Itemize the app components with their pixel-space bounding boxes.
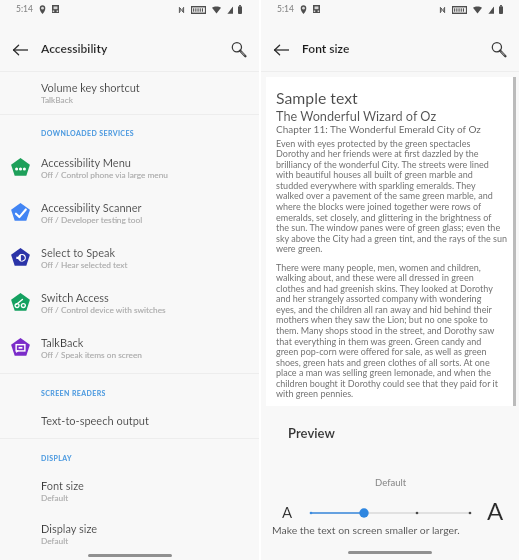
staticText: clothes and had greenish skins. They loo… bbox=[276, 283, 493, 294]
staticText: and her strangely assorted company with … bbox=[276, 293, 482, 304]
button[interactable]: Text-to-speech output bbox=[0, 412, 259, 429]
staticText: green pop-corn were offered for sale, as… bbox=[276, 346, 487, 357]
staticText: were green. bbox=[276, 243, 323, 254]
staticText: them. Many shops stood in the street, an… bbox=[276, 325, 495, 336]
staticText: Off / Control phone via large menu bbox=[41, 170, 168, 180]
staticText: Dorothy and her friends were at first da… bbox=[276, 148, 479, 159]
button[interactable]: Smaller text bbox=[282, 503, 293, 521]
staticText: eyes, and the children all ran away and … bbox=[276, 304, 492, 315]
staticText: Font size bbox=[41, 479, 84, 492]
button[interactable]: Search bbox=[218, 28, 259, 71]
staticText: the sun. The window panes were of green … bbox=[276, 222, 501, 233]
button[interactable]: Volume key shortcut bbox=[0, 79, 259, 107]
staticText: brilliancy of the wonderful City. The st… bbox=[276, 159, 489, 170]
staticText: Volume key shortcut bbox=[41, 81, 140, 94]
staticText: Even with eyes protected by the green sp… bbox=[276, 138, 471, 149]
button[interactable]: Accessibility Scanner bbox=[0, 190, 259, 235]
staticText: The Wonderful Wizard of Oz bbox=[276, 108, 437, 123]
staticText: TalkBack bbox=[41, 336, 84, 349]
button[interactable]: Switch Access bbox=[0, 280, 259, 325]
staticText: Display size bbox=[41, 522, 98, 535]
staticText: 5:14 bbox=[16, 4, 33, 14]
button[interactable]: Font size slider bbox=[305, 499, 481, 521]
staticText: Switch Access bbox=[41, 291, 109, 304]
staticText: Off / Speak items on screen bbox=[41, 350, 142, 360]
staticText: A bbox=[282, 503, 293, 521]
staticText: Accessibility Menu bbox=[41, 156, 131, 169]
staticText: DOWNLOADED SERVICES bbox=[41, 129, 135, 137]
button[interactable]: Back bbox=[0, 28, 41, 71]
staticText: Preview bbox=[288, 425, 335, 441]
staticText: Accessibility bbox=[41, 41, 108, 55]
staticText: Chapter 11: The Wonderful Emerald City o… bbox=[276, 123, 481, 135]
staticText: Off / Developer testing tool bbox=[41, 215, 143, 225]
button[interactable]: Accessibility Menu bbox=[0, 145, 259, 190]
staticText: with beautiful houses all built of green… bbox=[276, 169, 473, 180]
staticText: Text-to-speech output bbox=[41, 414, 149, 427]
staticText: Default bbox=[41, 493, 69, 503]
staticText: 5:14 bbox=[277, 4, 294, 14]
staticText: sky above the City had a green tint, and… bbox=[276, 233, 507, 244]
staticText: walking about, and these were all dresse… bbox=[276, 272, 474, 283]
staticText: shoes, green hats and green clothes of a… bbox=[276, 357, 490, 368]
staticText: A bbox=[487, 496, 504, 525]
staticText: Select to Speak bbox=[41, 246, 116, 259]
staticText: There were many people, men, women and c… bbox=[276, 262, 481, 273]
staticText: Make the text on screen smaller or large… bbox=[272, 524, 460, 536]
staticText: with green pennies. bbox=[276, 388, 354, 399]
button[interactable]: Back bbox=[261, 28, 302, 71]
button[interactable]: TalkBack bbox=[0, 325, 259, 370]
staticText: walked over a pavement of the same green… bbox=[276, 190, 493, 201]
staticText: that everything in them was green. Green… bbox=[276, 336, 482, 347]
staticText: Accessibility Scanner bbox=[41, 201, 142, 214]
staticText: Sample text bbox=[276, 88, 358, 107]
button[interactable]: Larger text bbox=[487, 496, 504, 525]
staticText: TalkBack bbox=[41, 95, 73, 105]
button[interactable]: Font size bbox=[0, 477, 259, 505]
staticText: DISPLAY bbox=[41, 454, 72, 462]
button[interactable]: Select to Speak bbox=[0, 235, 259, 280]
staticText: place a man was selling green lemonade, … bbox=[276, 367, 491, 378]
staticText: Off / Control device with switches bbox=[41, 305, 166, 315]
staticText: SCREEN READERS bbox=[41, 389, 106, 397]
staticText: Off / Hear selected text bbox=[41, 260, 128, 270]
staticText: emeralds, set closely, and glittering in… bbox=[276, 212, 492, 223]
staticText: Default bbox=[375, 477, 407, 488]
button[interactable]: Search bbox=[478, 28, 519, 71]
staticText: children bought it Dorothy could see tha… bbox=[276, 378, 498, 389]
staticText: Font size bbox=[302, 41, 350, 55]
button[interactable]: Display size bbox=[0, 520, 259, 548]
staticText: where the blocks were joined together we… bbox=[276, 201, 482, 212]
staticText: Default bbox=[41, 536, 69, 546]
staticText: mothers when they saw the Lion; but no o… bbox=[276, 314, 488, 325]
staticText: studded everywhere with sparkling emeral… bbox=[276, 180, 476, 191]
